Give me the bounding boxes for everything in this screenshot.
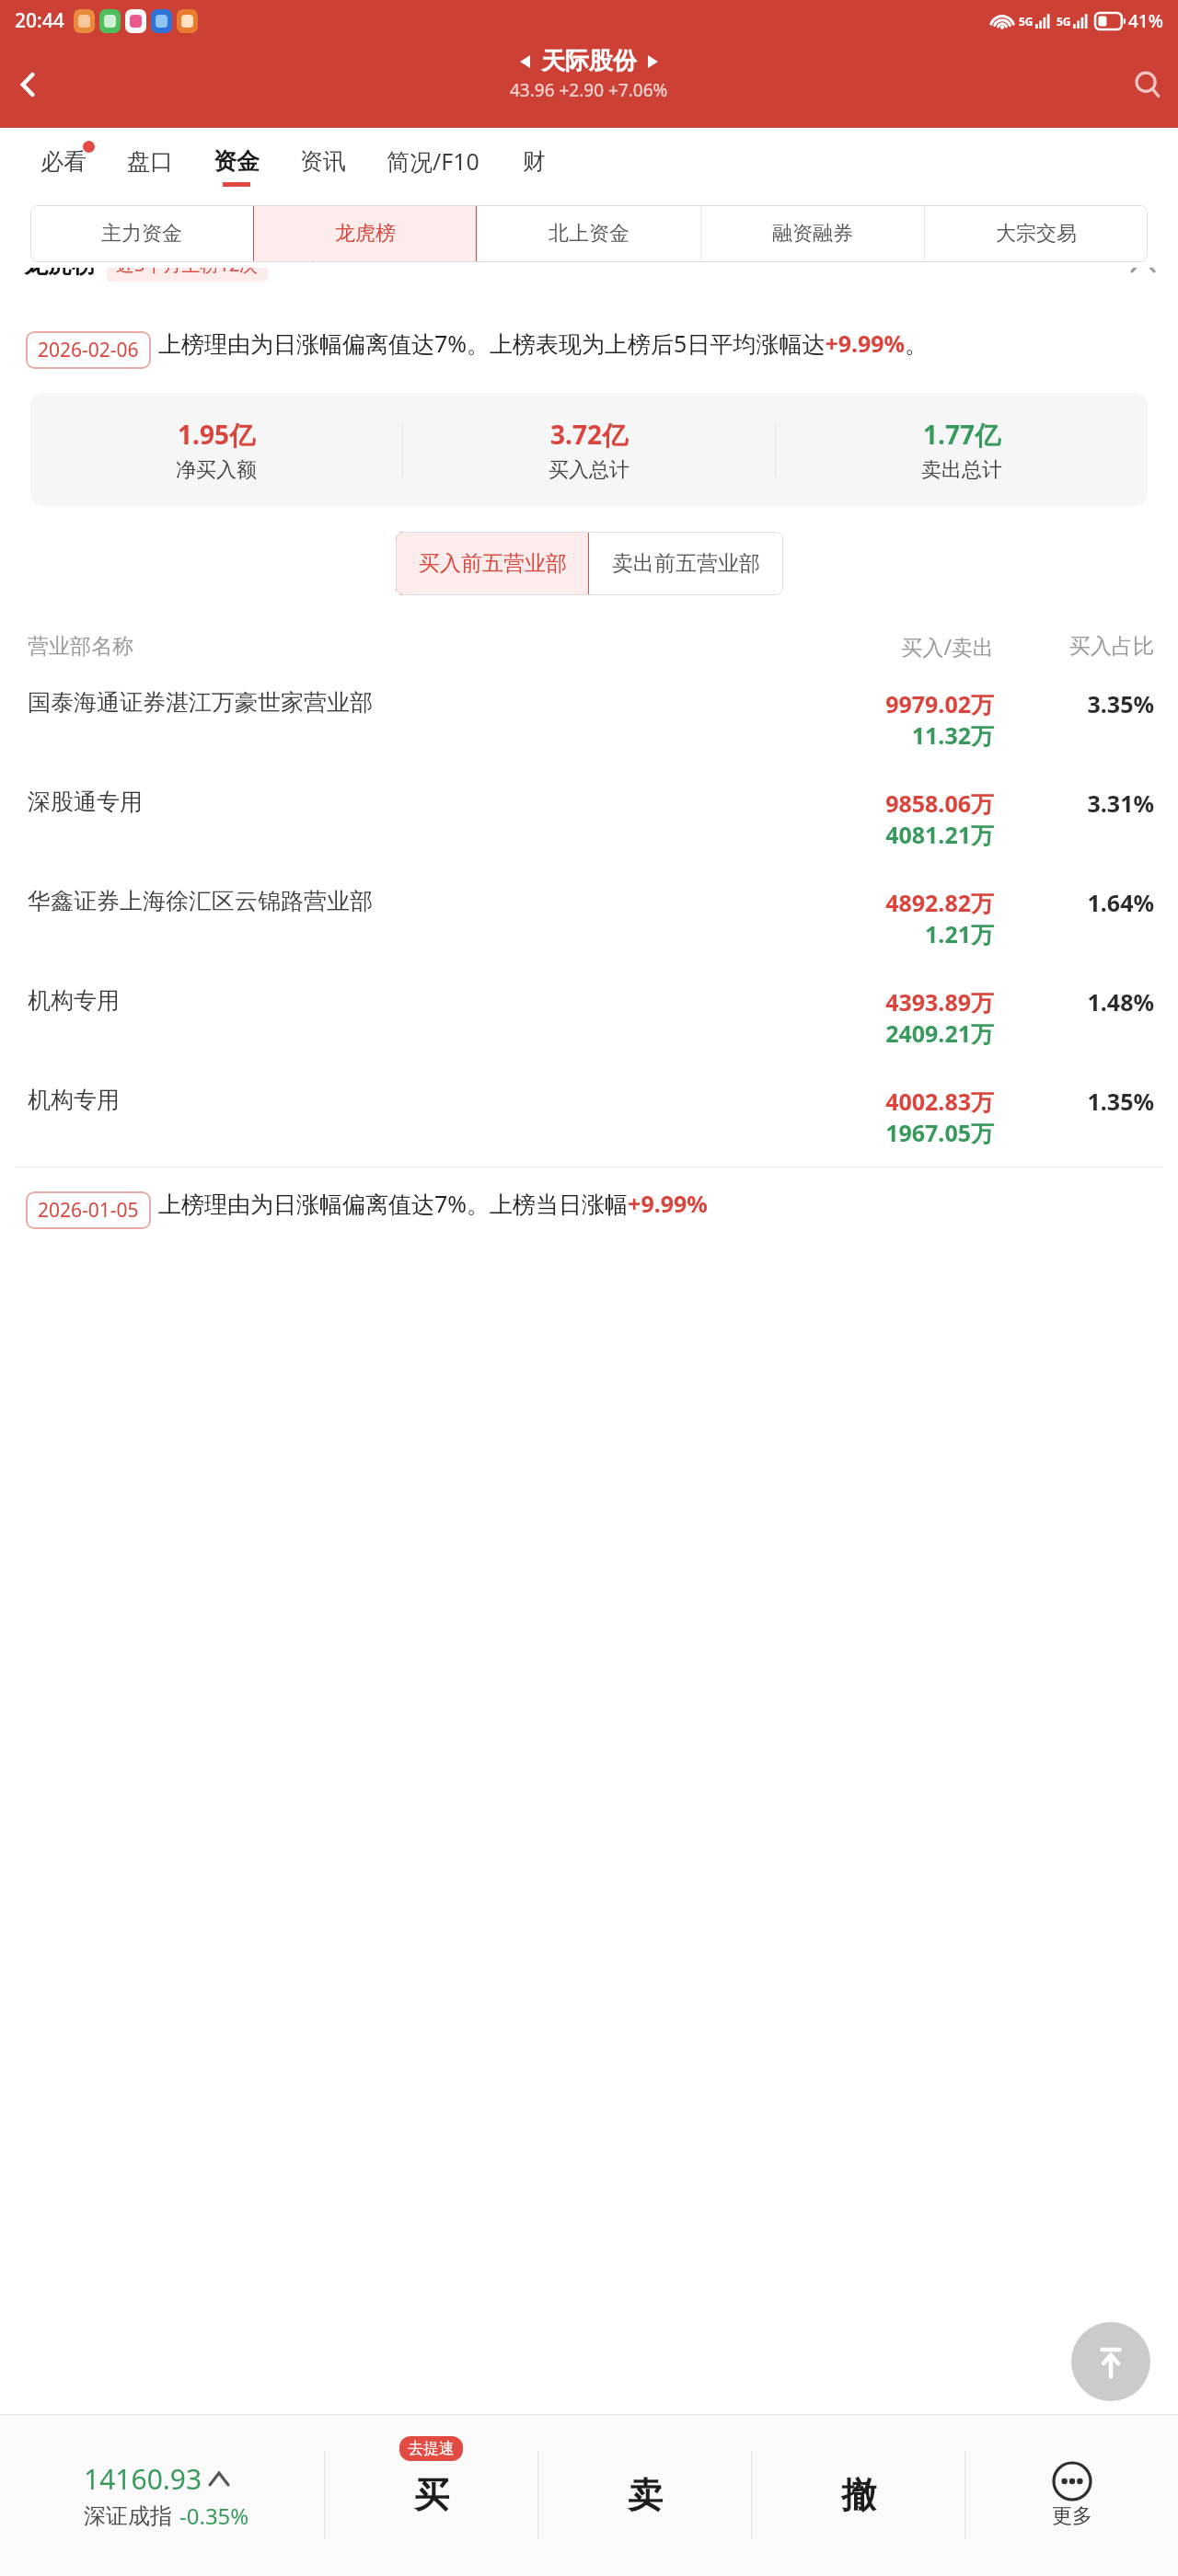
button[interactable]: 大宗交易 — [924, 205, 1148, 262]
staticText: 龙虎榜 — [24, 268, 96, 280]
button[interactable]: 14160.93 — [0, 2414, 324, 2576]
staticText: 1.35% — [1016, 1086, 1154, 1117]
staticText: 2026-02-06 — [38, 337, 139, 363]
button[interactable]: Search — [1117, 54, 1178, 115]
button[interactable]: 深股通专用 — [0, 760, 1178, 859]
staticText: 4892.82万 — [885, 887, 994, 918]
staticText: 主力资金 — [101, 221, 182, 247]
staticText: 卖出前五营业部 — [612, 550, 760, 577]
staticText: 买入前五营业部 — [419, 550, 567, 577]
staticText: 3.31% — [1016, 788, 1154, 819]
button[interactable]: 卖出前五营业部 — [589, 532, 783, 595]
staticText: 20:44 — [15, 7, 64, 34]
button[interactable]: 融资融券 — [700, 205, 924, 262]
staticText: 11.32万 — [911, 719, 994, 751]
staticText: 5G — [1019, 14, 1034, 29]
staticText: 买 — [414, 2473, 449, 2517]
staticText: 净买入额 — [176, 457, 257, 483]
button[interactable]: 更多 — [965, 2414, 1178, 2576]
staticText: 财 — [523, 147, 546, 176]
staticText: 华鑫证券上海徐汇区云锦路营业部 — [28, 887, 791, 915]
button[interactable]: 机构专用 — [0, 1058, 1178, 1157]
staticText: -0.35% — [179, 2501, 249, 2531]
button[interactable]: 卖 — [538, 2414, 751, 2576]
staticText: 卖出总计 — [921, 457, 1002, 483]
staticText: 买入总计 — [549, 457, 629, 483]
staticText: 简况/F10 — [387, 145, 479, 177]
staticText: 上榜理由为日涨幅偏离值达7%。上榜表现为上榜后5日平均涨幅达+9.99%。 — [158, 328, 929, 359]
staticText: 营业部名称 — [28, 633, 801, 660]
staticText: 41% — [1128, 9, 1163, 33]
staticText: 2026-01-05 — [38, 1197, 139, 1224]
staticText: 必看 — [40, 147, 87, 176]
staticText: 买入/卖出 — [801, 632, 994, 661]
staticText: 5G — [1057, 14, 1071, 29]
staticText: 机构专用 — [28, 986, 791, 1015]
button[interactable]: 主力资金 — [30, 205, 253, 262]
button[interactable]: 资金 — [214, 128, 260, 205]
staticText: 1.21万 — [925, 918, 994, 949]
staticText: 撤 — [841, 2473, 876, 2517]
staticText: 大宗交易 — [996, 221, 1077, 247]
button[interactable]: 资讯 — [300, 128, 346, 205]
staticText: 3.35% — [1016, 688, 1154, 719]
staticText: 机构专用 — [28, 1086, 791, 1114]
staticText: 更多 — [1052, 2503, 1092, 2529]
staticText: 卖 — [628, 2473, 663, 2517]
button[interactable]: Back — [0, 56, 57, 113]
button[interactable]: 盘口 — [127, 128, 173, 205]
staticText: 3.72亿 — [550, 417, 628, 452]
staticText: 去提速 — [408, 2439, 455, 2458]
staticText: 4393.89万 — [885, 986, 994, 1018]
staticText: 9979.02万 — [885, 688, 994, 719]
staticText: 1.48% — [1016, 986, 1154, 1018]
staticText: 1967.05万 — [885, 1117, 994, 1148]
button[interactable]: 简况/F10 — [387, 128, 479, 205]
button[interactable]: 撤 — [752, 2414, 964, 2576]
staticText: 上榜理由为日涨幅偏离值达7%。上榜当日涨幅+9.99% — [158, 1188, 708, 1219]
staticText: 1.77亿 — [923, 417, 1000, 452]
button[interactable]: 国泰海通证券湛江万豪世家营业部 — [0, 661, 1178, 760]
staticText: 14160.93 — [84, 2460, 202, 2498]
button[interactable]: 北上资金 — [477, 205, 700, 262]
button[interactable]: 龙虎榜 — [253, 205, 477, 262]
staticText: 深证成指 — [84, 2502, 172, 2530]
staticText: 1.95亿 — [178, 417, 255, 452]
button[interactable]: Scroll to top — [1071, 2322, 1150, 2401]
staticText: 盘口 — [127, 147, 173, 176]
button[interactable]: 财 — [520, 128, 548, 205]
staticText: 43.96 +2.90 +7.06% — [510, 78, 668, 102]
staticText: 1.64% — [1016, 887, 1154, 918]
staticText: 4002.83万 — [885, 1086, 994, 1117]
staticText: 天际股份 — [541, 46, 637, 76]
button[interactable]: 买入前五营业部 — [396, 532, 589, 595]
button[interactable]: 买 — [325, 2414, 537, 2576]
staticText: 2409.21万 — [885, 1018, 994, 1049]
button[interactable]: 必看 — [40, 128, 87, 205]
staticText: 近3个月上榜12次 — [116, 268, 259, 277]
staticText: 4081.21万 — [885, 819, 994, 850]
staticText: 资金 — [214, 147, 260, 176]
staticText: 深股通专用 — [28, 788, 791, 816]
staticText: 龙虎榜 — [335, 221, 396, 247]
button[interactable]: 机构专用 — [0, 959, 1178, 1058]
staticText: 9858.06万 — [885, 788, 994, 819]
staticText: 融资融券 — [772, 221, 853, 247]
staticText: 国泰海通证券湛江万豪世家营业部 — [28, 688, 791, 717]
staticText: 买入占比 — [1016, 633, 1154, 660]
staticText: 北上资金 — [549, 221, 629, 247]
staticText: 资讯 — [300, 147, 346, 176]
button[interactable]: 华鑫证券上海徐汇区云锦路营业部 — [0, 859, 1178, 959]
